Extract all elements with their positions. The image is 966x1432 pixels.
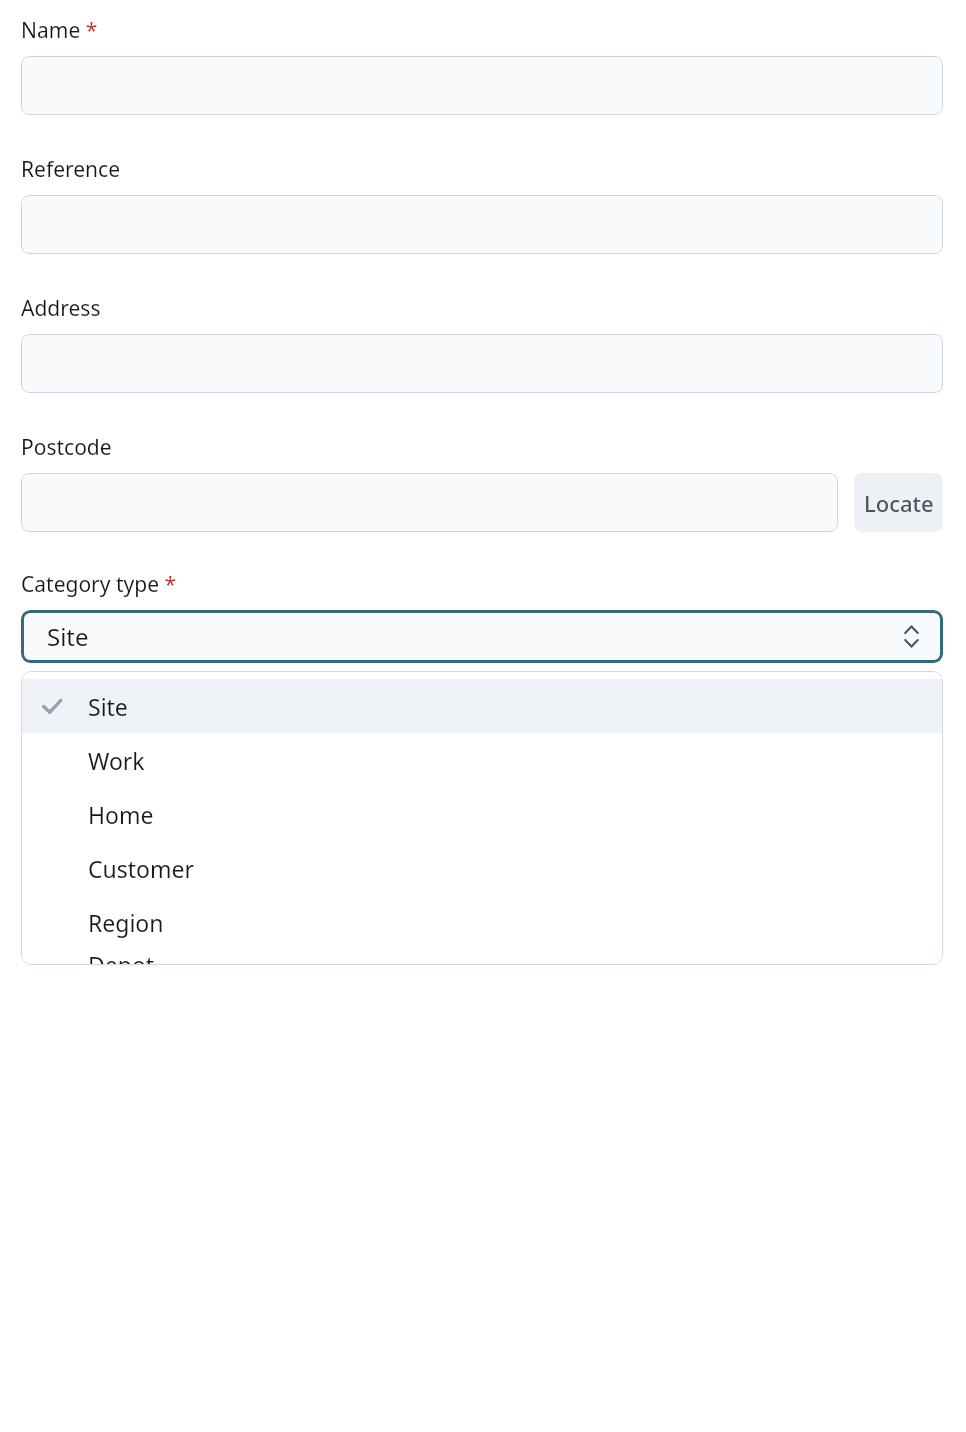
- button[interactable]: [21, 334, 943, 393]
- staticText: Home: [88, 799, 154, 830]
- button[interactable]: Site: [21, 610, 943, 663]
- button[interactable]: Customer: [21, 841, 943, 895]
- staticText: Depot: [88, 949, 155, 965]
- staticText: Name *: [21, 16, 98, 45]
- button[interactable]: Work: [21, 733, 943, 787]
- staticText: Category type *: [21, 570, 177, 599]
- staticText: Locate: [864, 488, 934, 518]
- staticText: Postcode: [21, 433, 112, 462]
- staticText: Address: [21, 294, 101, 323]
- staticText: Reference: [21, 155, 120, 184]
- staticText: Work: [88, 745, 145, 776]
- button[interactable]: [21, 195, 943, 254]
- button[interactable]: Region: [21, 895, 943, 949]
- button[interactable]: [21, 473, 838, 532]
- staticText: Region: [88, 907, 164, 938]
- staticText: Site: [47, 620, 89, 653]
- button[interactable]: Home: [21, 787, 943, 841]
- button[interactable]: Depot: [21, 949, 943, 965]
- button[interactable]: [21, 56, 943, 115]
- staticText: Customer: [88, 853, 194, 884]
- staticText: Site: [88, 691, 128, 722]
- button[interactable]: Locate: [854, 473, 943, 532]
- button[interactable]: Site: [21, 679, 943, 733]
